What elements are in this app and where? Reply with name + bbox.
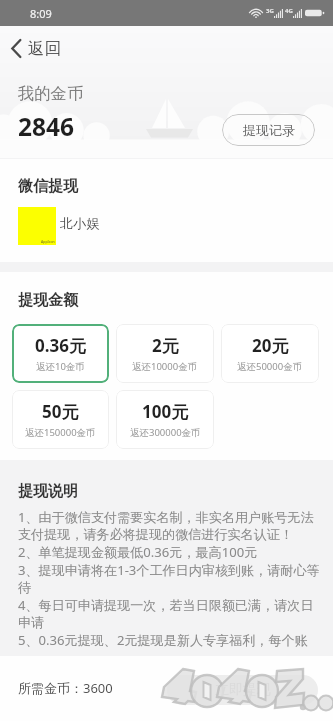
- staticText: AppIcon: [41, 239, 55, 244]
- staticText: 100元: [142, 400, 189, 423]
- staticText: 5、0.36元提现、2元提现是新人专享福利，每个账: [18, 631, 308, 649]
- staticText: 0.36元: [35, 334, 86, 357]
- staticText: 20元: [252, 334, 289, 357]
- staticText: 2846: [18, 110, 75, 143]
- staticText: 提现记录: [243, 122, 295, 138]
- staticText: 我的金币: [18, 83, 84, 104]
- staticText: 返回: [28, 38, 61, 59]
- staticText: 8:09: [30, 6, 52, 21]
- button[interactable]: Back: [0, 26, 333, 70]
- staticText: 4、每日可申请提现一次，若当日限额已满，请次日申请: [18, 596, 321, 631]
- staticText: 微信提现: [18, 177, 78, 196]
- staticText: 返还150000金币: [25, 426, 96, 439]
- staticText: 1、由于微信支付需要实名制，非实名用户账号无法支付提现，请务必将提现的微信进行实…: [18, 508, 321, 543]
- button[interactable]: 20元: [221, 324, 319, 383]
- staticText: 3G: [266, 7, 274, 15]
- staticText: 3、提现申请将在1-3个工作日内审核到账，请耐心等待: [18, 561, 321, 596]
- staticText: 提现说明: [18, 482, 78, 501]
- staticText: 返还10金币: [36, 360, 85, 373]
- staticText: 北小娱: [60, 215, 100, 232]
- staticText: 2、单笔提现金额最低0.36元，最高100元: [18, 543, 258, 561]
- staticText: 所需金币：3600: [18, 679, 113, 697]
- button[interactable]: 100元: [116, 390, 214, 449]
- staticText: 立即提现: [215, 681, 271, 699]
- button[interactable]: 50元: [12, 390, 109, 449]
- button[interactable]: 2元: [116, 324, 214, 383]
- staticText: 返还10000金币: [132, 360, 198, 373]
- staticText: 4G: [285, 7, 293, 15]
- other: Back: [11, 40, 22, 57]
- staticText: 返还50000金币: [237, 360, 303, 373]
- staticText: 提现金额: [18, 291, 78, 310]
- staticText: 50元: [42, 400, 79, 423]
- staticText: 2元: [152, 334, 179, 357]
- staticText: 返还300000金币: [130, 426, 201, 439]
- button[interactable]: 立即提现: [167, 675, 318, 705]
- button[interactable]: 0.36元: [12, 324, 109, 383]
- button[interactable]: 提现记录: [222, 114, 315, 146]
